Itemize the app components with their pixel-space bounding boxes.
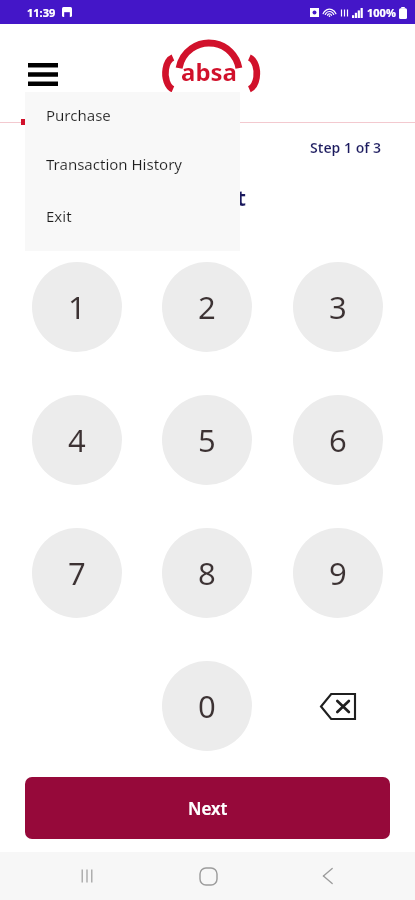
button[interactable]: 4 [32,395,122,485]
button[interactable]: 7 [32,528,122,618]
staticText: Enter the amount [52,182,247,212]
staticText: 2 [198,286,216,328]
button[interactable]: Next [25,777,390,839]
staticText: 11:39 [27,5,56,20]
staticText: 4 [68,419,86,461]
button[interactable]: Back [304,852,352,900]
staticText: absa [181,55,237,88]
staticText: 8 [198,552,216,594]
button[interactable]: Backspace [293,661,383,751]
staticText: Transaction History [46,154,183,174]
staticText: 7 [68,552,86,594]
staticText: 3 [329,286,347,328]
staticText: 100% [367,5,396,20]
button[interactable]: 5 [162,395,252,485]
staticText: Purchase [46,105,111,125]
button[interactable]: Recent apps [63,852,111,900]
staticText: 9 [329,552,347,594]
button[interactable]: 6 [293,395,383,485]
button[interactable]: 2 [162,262,252,352]
button[interactable]: 8 [162,528,252,618]
button[interactable]: Menu [22,56,64,92]
button[interactable]: Transaction History [25,138,240,190]
staticText: Exit [46,206,72,226]
staticText: 5 [198,419,216,461]
button[interactable]: 9 [293,528,383,618]
button[interactable]: 3 [293,262,383,352]
staticText: 0 [198,685,216,727]
button[interactable]: 0 [162,661,252,751]
staticText: 6 [329,419,347,461]
button[interactable]: Purchase [25,92,240,138]
staticText: Step 1 of 3 [310,138,382,157]
button[interactable]: Home [184,852,232,900]
button[interactable]: 1 [32,262,122,352]
staticText: 1 [68,286,86,328]
staticText: Next [188,797,228,820]
button[interactable]: Exit [25,190,240,242]
